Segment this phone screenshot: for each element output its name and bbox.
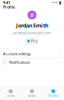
staticText: Notifications bbox=[9, 60, 30, 65]
button[interactable]: Home bbox=[0, 87, 21, 100]
button[interactable]: Notifications bbox=[0, 58, 64, 66]
staticText: > bbox=[59, 51, 61, 56]
staticText: ••• ▮ bbox=[52, 0, 61, 5]
button[interactable]: Search bbox=[21, 87, 43, 100]
staticText: jordan@example.com bbox=[12, 30, 51, 35]
staticText: Search bbox=[28, 94, 36, 98]
staticText: Jordan Smith bbox=[16, 22, 48, 29]
staticText: > bbox=[60, 60, 62, 65]
staticText: Profile bbox=[3, 4, 15, 10]
staticText: Pro bbox=[31, 38, 37, 44]
staticText: Account settings bbox=[3, 51, 31, 56]
staticText: 9:41 bbox=[3, 0, 10, 5]
button[interactable]: Profile bbox=[43, 87, 64, 100]
staticText: JS bbox=[30, 12, 33, 18]
button[interactable]: Account settings bbox=[0, 50, 64, 58]
staticText: Profile bbox=[48, 94, 58, 98]
staticText: Home bbox=[7, 94, 15, 98]
